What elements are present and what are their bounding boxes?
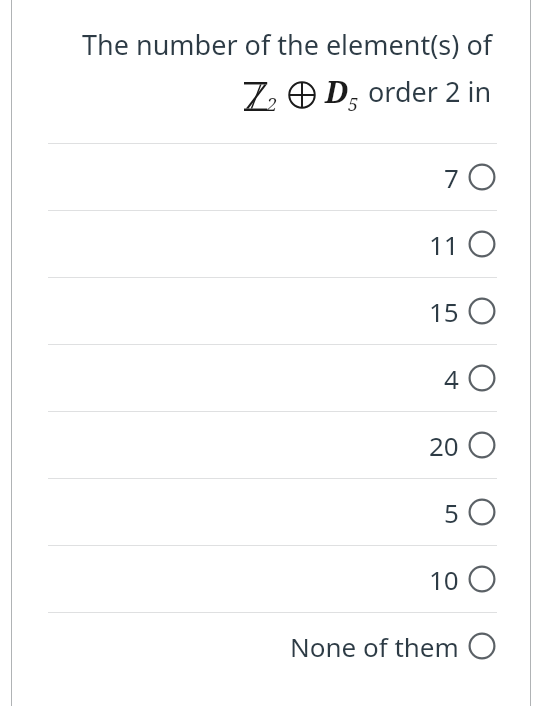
staticText: order 2 in bbox=[368, 73, 492, 110]
staticText: 11 bbox=[429, 227, 459, 262]
staticText: 4 bbox=[444, 361, 459, 396]
other: Select 15 bbox=[468, 297, 496, 325]
staticText: The number of the element(s) of bbox=[82, 26, 492, 63]
staticText: 5 bbox=[348, 92, 359, 117]
button[interactable]: 15 bbox=[0, 278, 542, 344]
button[interactable]: 7 bbox=[0, 144, 542, 210]
button[interactable]: 11 bbox=[0, 211, 542, 277]
other: Select 20 bbox=[468, 431, 496, 459]
staticText: 5 bbox=[444, 495, 459, 530]
button[interactable]: None of them bbox=[0, 613, 542, 679]
button[interactable]: 4 bbox=[0, 345, 542, 411]
staticText: 2 bbox=[267, 92, 278, 117]
other: Select None of them bbox=[468, 632, 496, 660]
other: Select 10 bbox=[468, 565, 496, 593]
other: Select 7 bbox=[468, 163, 496, 191]
other: Select 11 bbox=[468, 230, 496, 258]
staticText: 10 bbox=[429, 562, 459, 597]
other: Select 5 bbox=[468, 498, 496, 526]
staticText: D bbox=[325, 71, 349, 112]
other: Select 4 bbox=[468, 364, 496, 392]
button[interactable]: 10 bbox=[0, 546, 542, 612]
staticText: 7 bbox=[444, 160, 459, 195]
staticText: 20 bbox=[429, 428, 459, 463]
button[interactable]: 5 bbox=[0, 479, 542, 545]
staticText: None of them bbox=[290, 629, 459, 664]
button[interactable]: 20 bbox=[0, 412, 542, 478]
staticText: 15 bbox=[429, 294, 459, 329]
